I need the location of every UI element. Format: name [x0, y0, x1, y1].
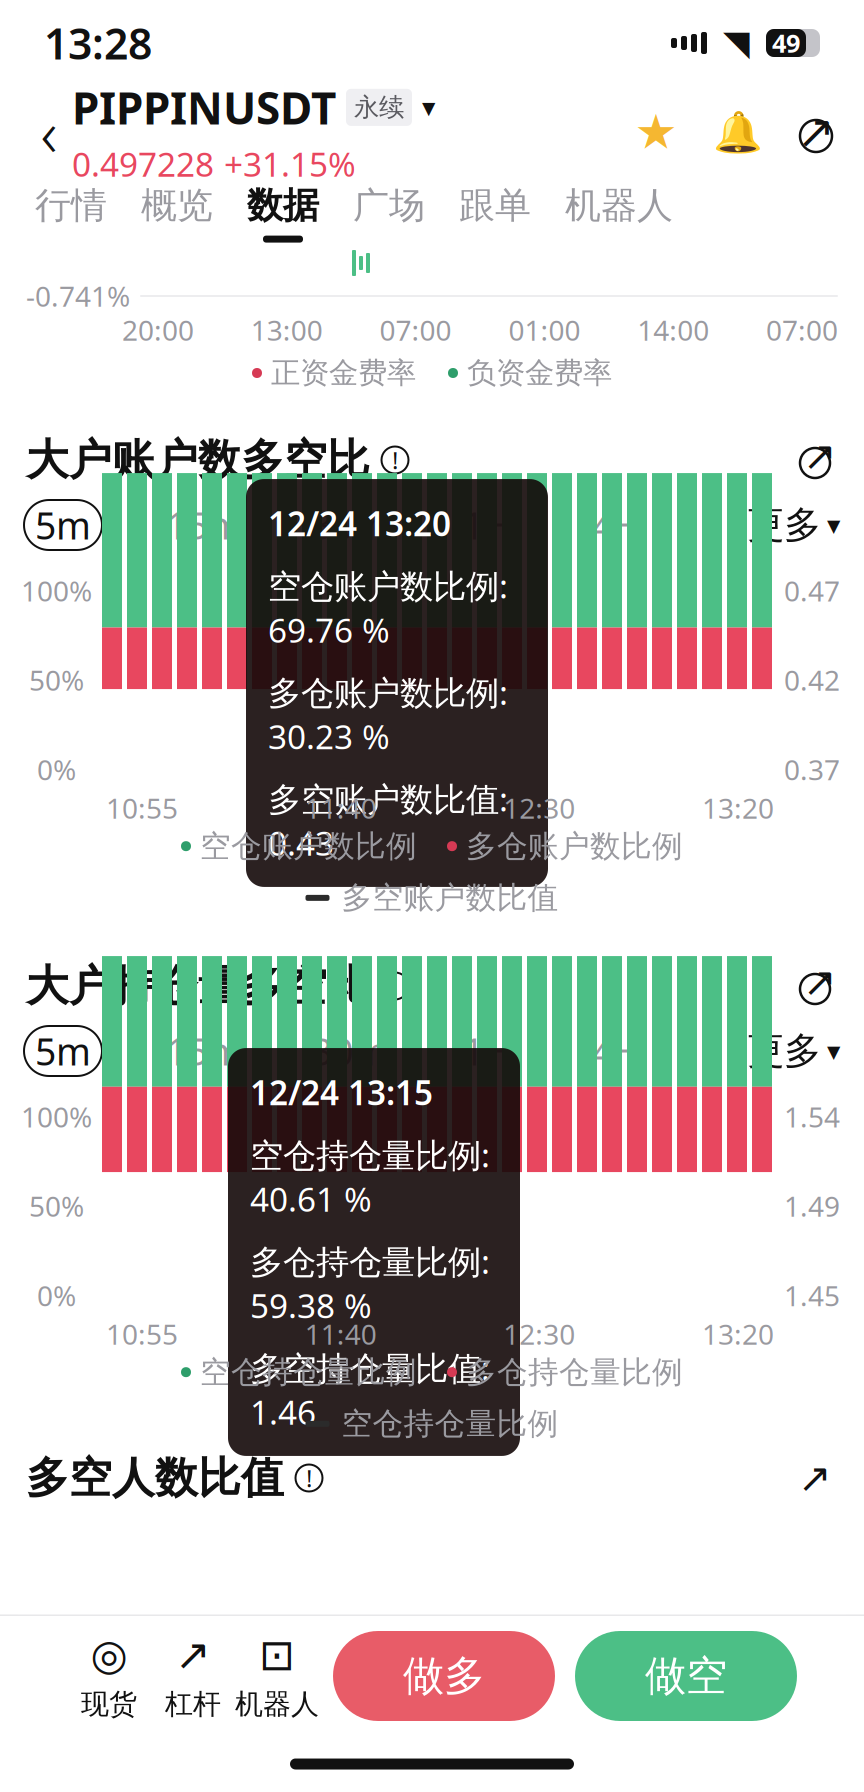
button[interactable]: 15m: [161, 500, 247, 550]
staticText: 12/24 13:20: [268, 501, 451, 545]
staticText: ↗: [797, 106, 835, 158]
staticText: 数据: [247, 183, 319, 228]
staticText: 12/24 13:15: [250, 1070, 433, 1114]
staticText: 49: [772, 26, 800, 60]
staticText: 🔔: [713, 109, 763, 155]
staticText: 概览: [141, 183, 213, 228]
staticText: 12:30: [503, 1315, 575, 1353]
staticText: 30m: [311, 500, 388, 550]
staticText: 0%: [37, 1277, 76, 1314]
staticText: 空仓账户数比例: 69.76 %: [268, 563, 508, 652]
staticText: 多空账户数比值: 0.43: [268, 776, 508, 865]
staticText: !: [306, 1462, 312, 1494]
staticText: 1H: [463, 1026, 512, 1076]
staticText: 机器人: [565, 183, 673, 228]
staticText: 广场: [353, 183, 425, 228]
staticText: 做空: [645, 1651, 727, 1701]
button[interactable]: 30m: [307, 1026, 393, 1076]
staticText: 大户持仓量多空比: [26, 960, 370, 1012]
staticText: ◥: [723, 23, 750, 63]
button[interactable]: 做空: [575, 1631, 797, 1721]
staticText: !: [392, 970, 398, 1002]
staticText: 杠杆: [165, 1687, 221, 1721]
button[interactable]: 1H: [452, 1026, 522, 1076]
button[interactable]: ⊡: [235, 1633, 319, 1719]
staticText: ◎: [90, 1631, 127, 1679]
staticText: ‹: [40, 89, 57, 174]
button[interactable]: ↗: [151, 1633, 235, 1719]
staticText: 机器人: [235, 1687, 319, 1721]
button[interactable]: 5m: [24, 500, 102, 550]
staticText: 永续: [354, 92, 404, 123]
staticText: 4H: [592, 500, 641, 550]
staticText: 11:40: [305, 1315, 377, 1353]
staticText: 11:40: [305, 789, 377, 827]
staticText: 现货: [81, 1687, 137, 1721]
staticText: 13:00: [251, 311, 323, 349]
button[interactable]: 4H: [582, 500, 652, 550]
staticText: 07:00: [380, 311, 452, 349]
staticText: 多空账户数比值: [341, 879, 558, 917]
staticText: ↗: [803, 959, 837, 1005]
button[interactable]: 多空人数比值: [26, 1452, 324, 1504]
button[interactable]: 机器人: [548, 178, 690, 248]
staticText: ⊡: [259, 1631, 295, 1679]
staticText: 0%: [37, 751, 76, 788]
staticText: 20:00: [122, 311, 194, 349]
staticText: 30m: [311, 1026, 388, 1076]
staticText: 1.49: [784, 1187, 840, 1225]
button[interactable]: Share chart: [792, 961, 838, 1011]
staticText: ★: [634, 105, 677, 159]
button[interactable]: Back: [26, 99, 72, 165]
staticText: 100%: [21, 572, 92, 609]
button[interactable]: ◎: [67, 1633, 151, 1719]
button[interactable]: 30m: [307, 500, 393, 550]
staticText: ▾: [827, 510, 840, 540]
staticText: 空仓持仓量比例: [200, 1353, 417, 1391]
staticText: 多仓持仓量比例: 59.38 %: [250, 1239, 490, 1327]
staticText: 10:55: [106, 789, 178, 827]
staticText: 10:55: [106, 1315, 178, 1353]
staticText: 12:30: [503, 789, 575, 827]
staticText: 01:00: [508, 311, 580, 349]
button[interactable]: 更多: [747, 1026, 840, 1076]
button[interactable]: Favorite: [634, 107, 678, 157]
button[interactable]: 大户账户数多空比: [26, 428, 410, 492]
button[interactable]: 行情: [18, 178, 124, 248]
button[interactable]: 更多: [747, 500, 840, 550]
button[interactable]: 大户持仓量多空比: [26, 954, 410, 1018]
staticText: 1.45: [784, 1277, 840, 1314]
staticText: 做多: [403, 1651, 485, 1701]
button[interactable]: 15m: [161, 1026, 247, 1076]
staticText: 0.497228: [72, 142, 214, 186]
button[interactable]: PIPPINUSDT: [72, 78, 435, 186]
staticText: 更多: [747, 1028, 821, 1074]
button[interactable]: Alerts: [716, 107, 760, 157]
button[interactable]: 概览: [124, 178, 230, 248]
button[interactable]: 1H: [452, 500, 522, 550]
staticText: 0.42: [784, 661, 840, 699]
button[interactable]: Share chart: [792, 1461, 838, 1495]
staticText: 多仓账户数比例: [466, 827, 683, 865]
staticText: 正资金费率: [271, 355, 416, 391]
staticText: 多空持仓量比值: 1.46: [250, 1345, 490, 1434]
staticText: 1.54: [784, 1098, 840, 1135]
button[interactable]: 广场: [336, 178, 442, 248]
staticText: 15m: [166, 500, 243, 550]
button[interactable]: Share chart: [792, 435, 838, 485]
staticText: ↗: [803, 433, 837, 479]
staticText: ↗: [798, 1455, 832, 1501]
button[interactable]: 数据: [230, 178, 336, 248]
staticText: 跟单: [459, 183, 531, 228]
staticText: 5m: [35, 500, 91, 550]
button[interactable]: 跟单: [442, 178, 548, 248]
staticText: 空仓账户数比例: [200, 827, 417, 865]
button[interactable]: 做多: [333, 1631, 555, 1721]
button[interactable]: 4H: [582, 1026, 652, 1076]
staticText: 空仓持仓量比例: 40.61 %: [250, 1132, 490, 1221]
button[interactable]: 5m: [24, 1026, 102, 1076]
button[interactable]: Share: [794, 107, 838, 157]
staticText: -0.741%: [26, 277, 130, 315]
staticText: 13:20: [702, 789, 774, 827]
staticText: 07:00: [766, 311, 838, 349]
